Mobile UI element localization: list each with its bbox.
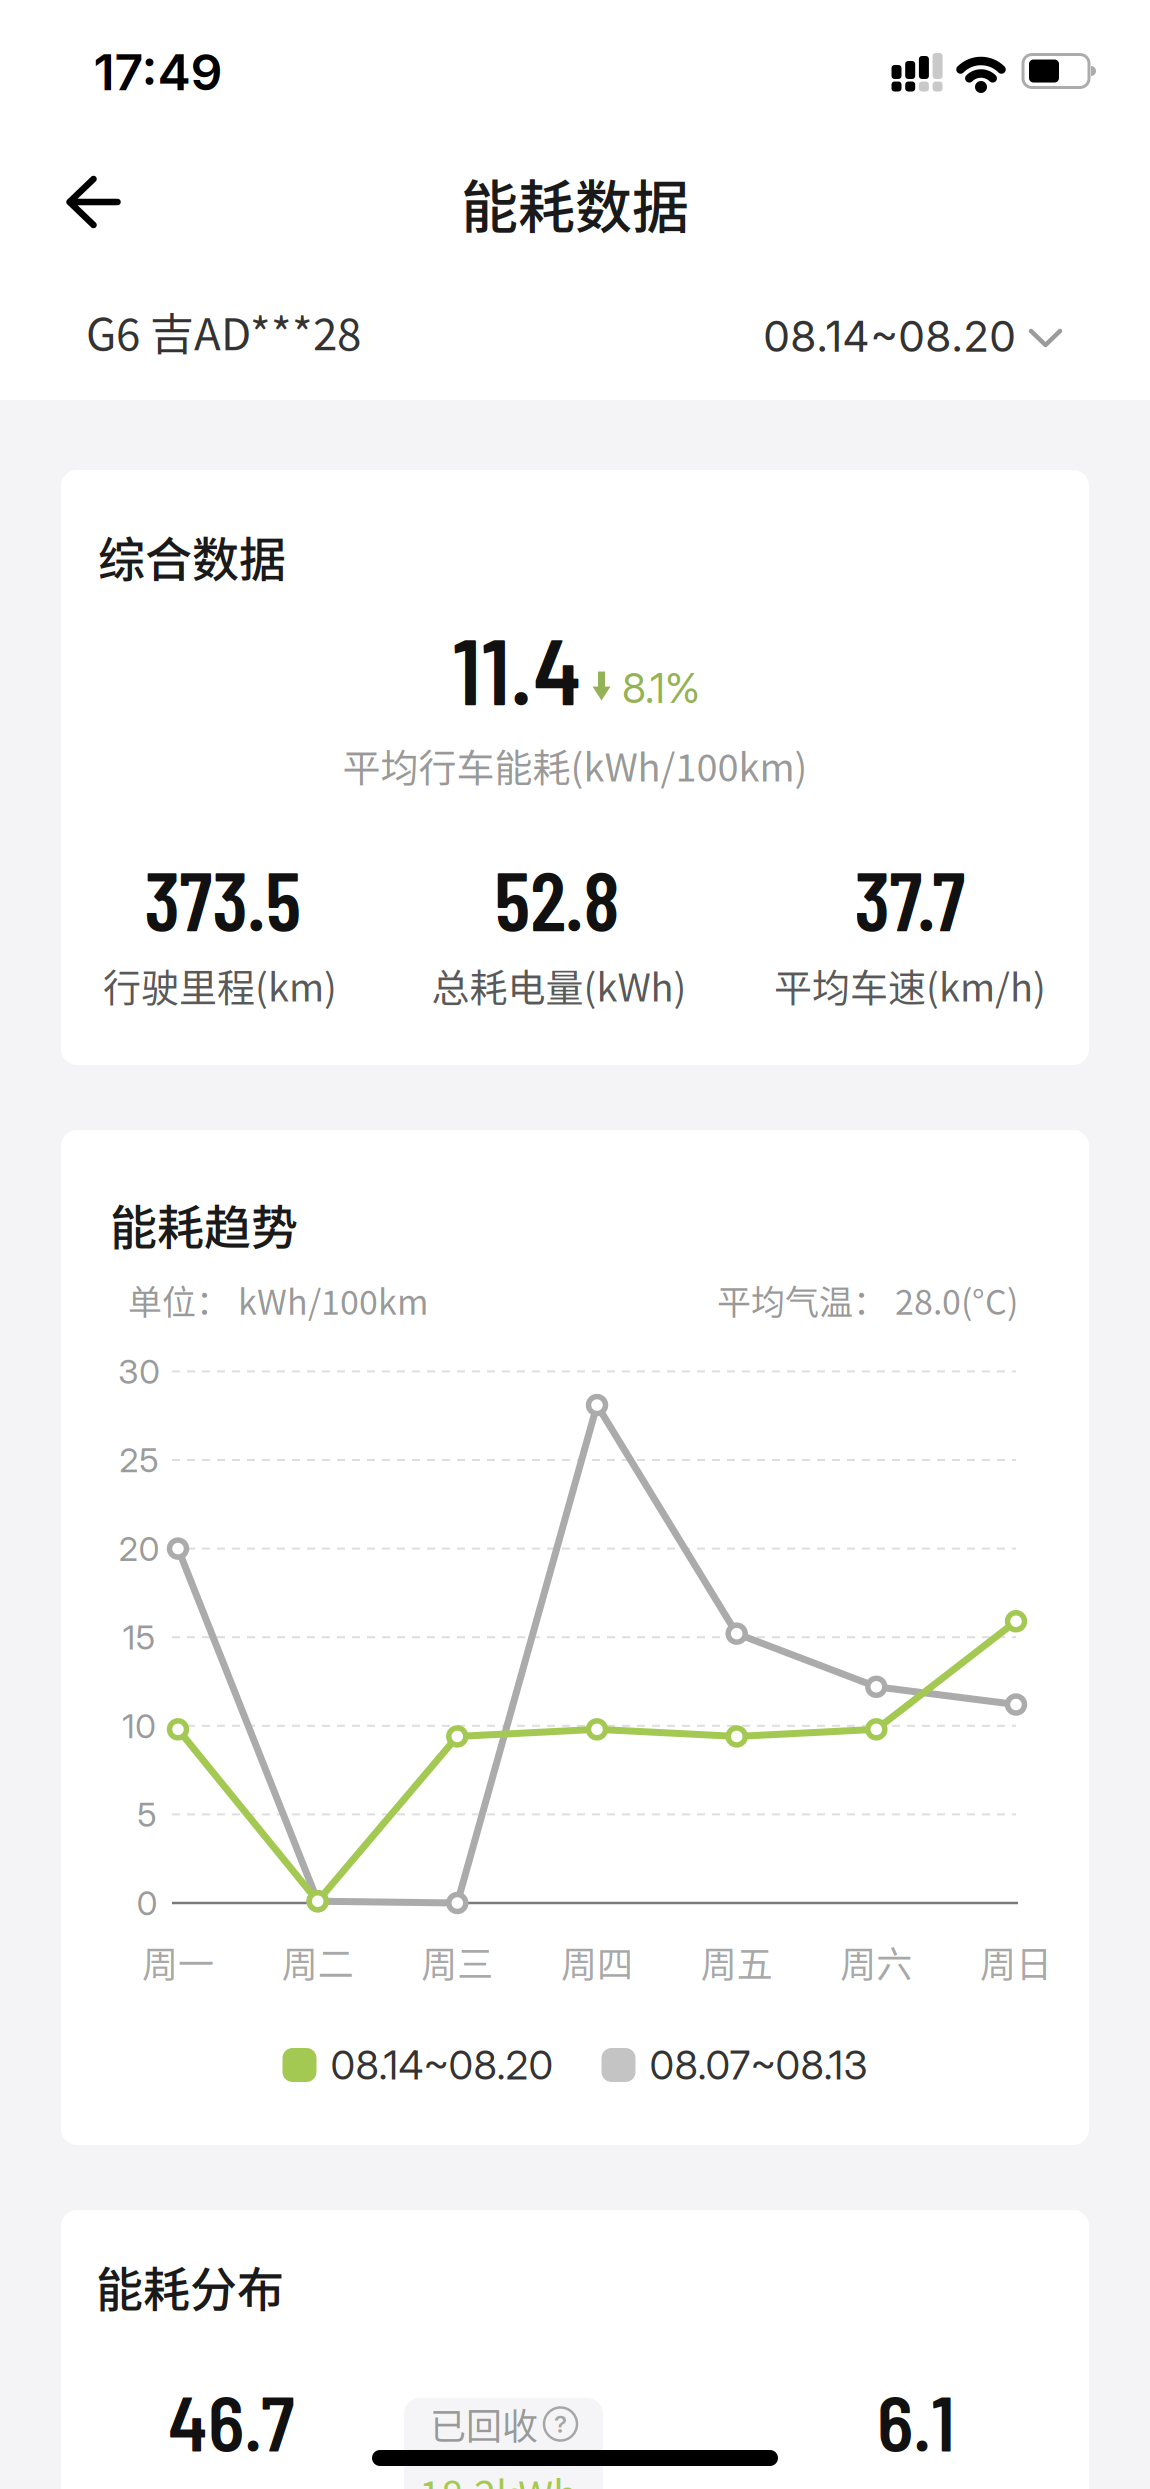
staticText: 综合数据 [98,522,286,590]
staticText: 5 [137,1794,157,1835]
staticText: 能耗分布 [96,2252,284,2320]
staticText: 08.14~08.20 [330,2041,553,2089]
staticText: 30 [118,1351,160,1392]
staticText: 行驶里程(km) [103,957,337,1012]
button[interactable]: 08.14~08.20 [763,310,1062,362]
staticText: 52.8 [494,848,619,948]
staticText: 08.07~08.13 [649,2041,867,2089]
staticText: 17:49 [93,42,222,102]
staticText: 0 [136,1882,157,1923]
staticText: 08.14~08.20 [763,310,1016,362]
staticText: ? [554,2409,567,2438]
staticText: 能耗趋势 [110,1190,298,1258]
staticText: 46.7 [168,2375,294,2467]
staticText: 能耗数据 [461,162,689,244]
staticText: 周二 [282,1936,354,1988]
staticText: 10 [122,1705,156,1746]
staticText: 6.1 [877,2375,955,2467]
staticText: 18.2kWh [419,2464,577,2489]
staticText: 25 [119,1439,159,1480]
staticText: 平均气温： 28.0(°C) [717,1275,1018,1325]
staticText: 周四 [561,1936,633,1988]
staticText: 15 [122,1617,155,1658]
staticText: 8.1% [622,663,700,713]
staticText: 11.4 [452,612,582,724]
staticText: G6 吉AD***28 [86,299,361,363]
staticText: 总耗电量(kWh) [431,957,686,1012]
staticText: 平均行车能耗(kWh/100km) [342,737,807,792]
staticText: 周日 [980,1936,1052,1988]
staticText: 已回收 [430,2398,538,2450]
staticText: 平均车速(km/h) [774,957,1046,1012]
staticText: 373.5 [144,848,301,948]
button[interactable]: Back [63,172,123,232]
staticText: 周三 [421,1936,493,1988]
staticText: 20 [118,1528,159,1569]
staticText: 周一 [142,1936,214,1988]
staticText: 37.7 [854,848,965,948]
staticText: 周六 [840,1936,912,1988]
button[interactable]: 已回收说明 [404,2398,603,2489]
staticText: 单位： kWh/100km [128,1275,428,1325]
staticText: 周五 [701,1936,773,1988]
